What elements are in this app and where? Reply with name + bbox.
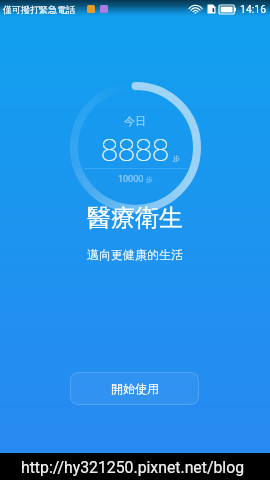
staticText: 開始使用: [111, 381, 159, 396]
staticText: 8888: [101, 132, 169, 168]
staticText: 醫療衛生: [87, 203, 183, 233]
staticText: 14:16: [240, 3, 267, 15]
staticText: 僅可撥打緊急電話: [3, 4, 75, 15]
staticText: 步: [146, 176, 153, 184]
staticText: 邁向更健康的生活: [87, 247, 183, 262]
staticText: 10000: [118, 174, 144, 185]
button[interactable]: 開始使用: [70, 372, 199, 405]
staticText: 今日: [124, 114, 146, 128]
staticText: 步: [173, 154, 180, 163]
staticText: http://hy321250.pixnet.net/blog: [21, 458, 245, 477]
